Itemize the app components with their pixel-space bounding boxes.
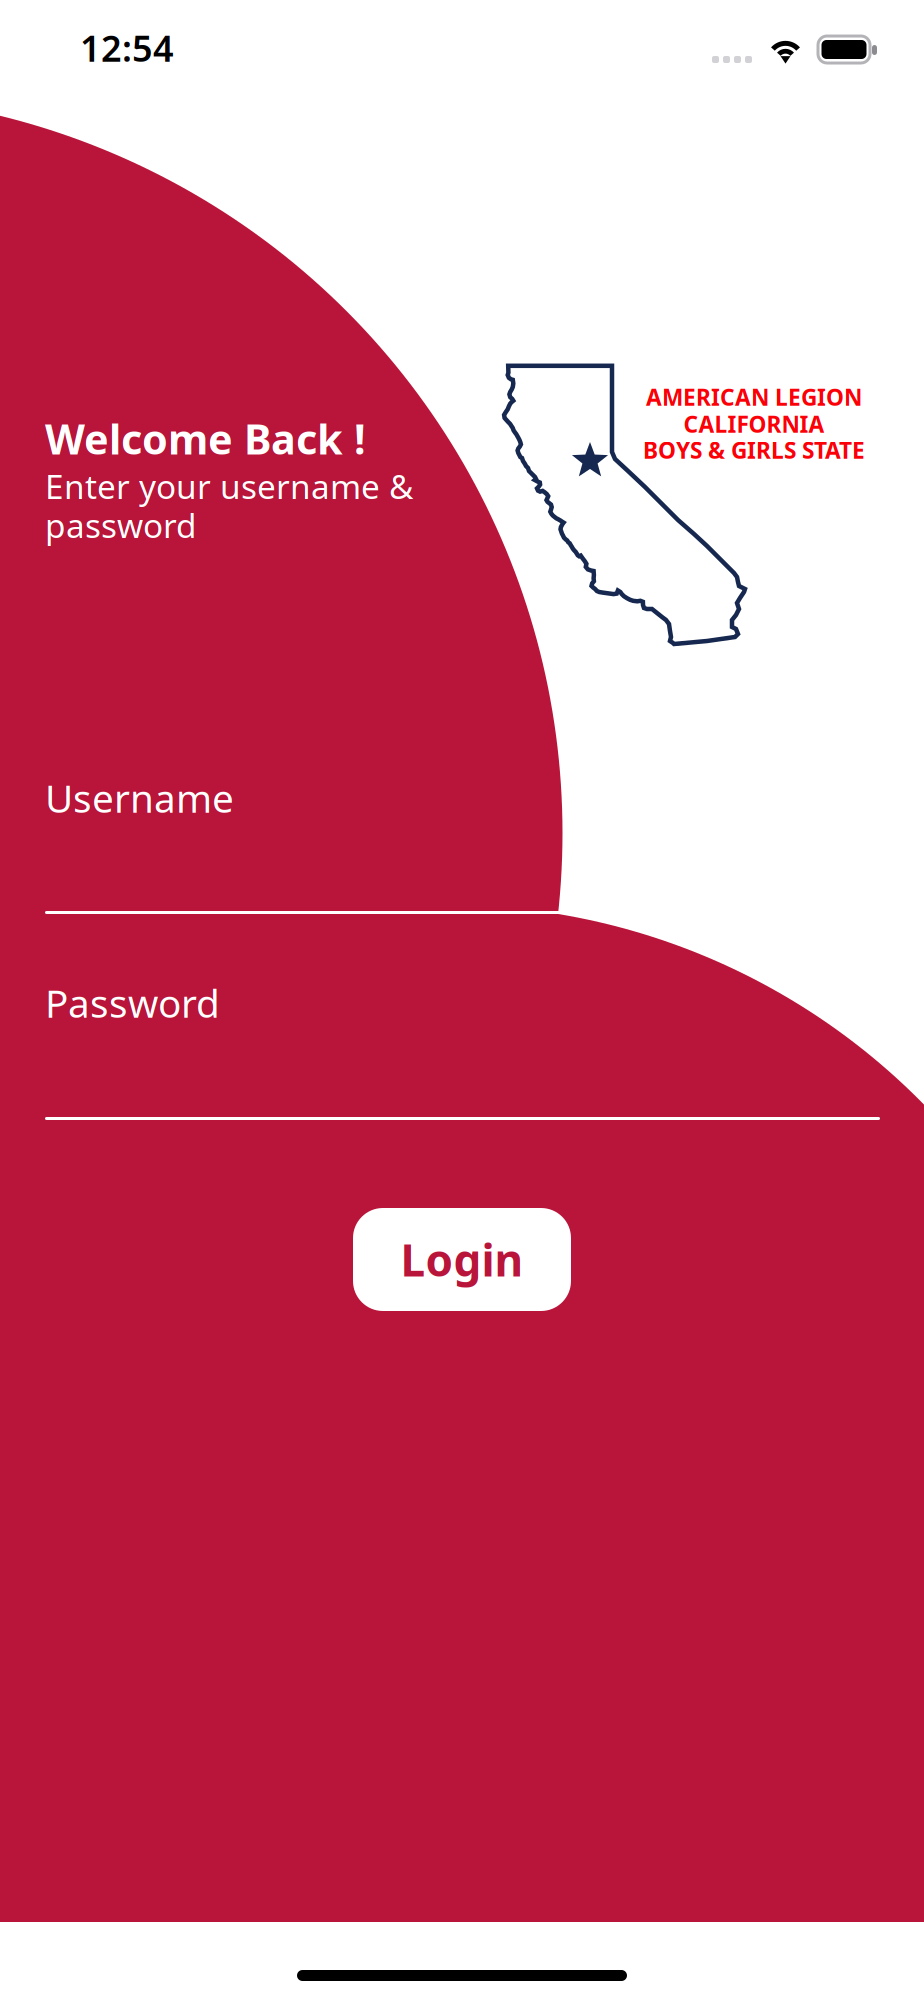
staticText: Password <box>45 977 220 1028</box>
staticText: CALIFORNIA <box>683 409 824 439</box>
staticText: Login <box>400 1230 523 1289</box>
staticText: Enter your username & <box>45 464 413 508</box>
staticText: password <box>45 503 197 547</box>
button[interactable]: Login <box>353 1208 571 1311</box>
staticText: Username <box>45 772 234 823</box>
staticText: AMERICAN LEGION <box>646 382 862 412</box>
staticText: Welcome Back ! <box>45 411 366 466</box>
staticText: 12:54 <box>80 24 174 72</box>
staticText: BOYS & GIRLS STATE <box>643 435 865 465</box>
